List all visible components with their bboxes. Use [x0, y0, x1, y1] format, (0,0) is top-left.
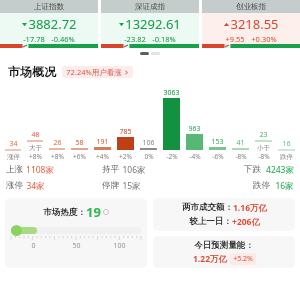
staticText: 4243家	[266, 164, 294, 176]
button[interactable]: 两市成交额：	[153, 198, 295, 231]
staticText: 创业板指	[236, 2, 266, 11]
button[interactable]: 72.24%用户看涨	[62, 66, 133, 78]
staticText: 3063	[163, 88, 180, 98]
staticText: 跌停	[253, 180, 270, 191]
staticText: -4%	[189, 152, 201, 161]
staticText: 100	[113, 241, 126, 251]
staticText: 19	[86, 203, 101, 221]
staticText: 34家	[26, 180, 45, 192]
staticText: -17.78	[23, 34, 45, 44]
staticText: 3882.72	[28, 15, 77, 33]
staticText: 191	[96, 137, 109, 147]
staticText: 涨停	[7, 153, 20, 161]
button[interactable]: 上证指数	[0, 0, 98, 48]
staticText: 上涨	[6, 164, 23, 175]
button[interactable]: 深证成指	[101, 0, 199, 48]
staticText: +0.30%	[251, 34, 277, 44]
staticText: -0.46%	[51, 34, 75, 44]
staticText: 1.16万亿	[233, 202, 267, 214]
staticText: 市场热度：	[43, 207, 86, 218]
staticText: 上证指数	[34, 2, 64, 11]
staticText: 48	[31, 130, 40, 140]
staticText: -6%	[212, 152, 224, 161]
staticText: +6%	[73, 152, 86, 161]
staticText: 72.24%用户看涨	[66, 67, 122, 77]
staticText: +4%	[96, 152, 109, 161]
staticText: 106家	[122, 164, 146, 176]
staticText: +9.55	[225, 34, 245, 44]
staticText: +5.2%	[233, 254, 253, 264]
staticText: 今日预测量能：	[194, 240, 254, 251]
staticText: 大于	[29, 144, 42, 152]
staticText: 3218.55	[230, 15, 279, 33]
staticText: 市场概况	[8, 64, 56, 79]
staticText: 16家	[275, 180, 294, 192]
staticText: +2%	[119, 152, 132, 161]
staticText: 58	[75, 138, 84, 148]
staticText: 41	[236, 138, 245, 148]
staticText: 13292.61	[125, 15, 181, 33]
staticText: 深证成指	[135, 2, 165, 11]
button[interactable]: 市场热度：	[5, 198, 147, 268]
staticText: 停牌	[102, 180, 119, 191]
staticText: 跌停	[280, 153, 293, 161]
staticText: 16	[282, 139, 291, 149]
staticText: -8%	[258, 152, 270, 161]
staticText: 15家	[122, 180, 141, 192]
button[interactable]: 创业板指	[202, 0, 300, 48]
staticText: 26	[53, 138, 62, 148]
staticText: 小于	[257, 144, 270, 152]
staticText: 0	[31, 241, 36, 251]
staticText: -23.82	[124, 34, 146, 44]
staticText: +8%	[51, 152, 64, 161]
button[interactable]: 今日预测量能：	[153, 236, 295, 268]
staticText: 50	[72, 241, 81, 251]
staticText: 23	[259, 130, 268, 140]
staticText: -0.18%	[152, 34, 176, 44]
staticText: 785	[119, 127, 132, 137]
staticText: 较上一日：	[189, 216, 232, 227]
staticText: -8%	[235, 152, 247, 161]
staticText: 两市成交额：	[182, 202, 233, 213]
staticText: 涨停	[6, 180, 23, 191]
staticText: +8%	[29, 152, 42, 161]
other: 说明	[103, 209, 109, 215]
staticText: 0%	[144, 152, 154, 161]
staticText: 1108家	[26, 164, 54, 176]
staticText: +206亿	[232, 216, 260, 228]
staticText: 153	[211, 137, 224, 147]
staticText: 下跌	[244, 164, 261, 175]
staticText: 1.22万亿	[193, 253, 227, 265]
staticText: 963	[188, 124, 201, 134]
staticText: 持平	[102, 164, 119, 175]
staticText: 106	[142, 138, 155, 148]
staticText: -2%	[166, 152, 178, 161]
staticText: 34	[9, 139, 18, 149]
